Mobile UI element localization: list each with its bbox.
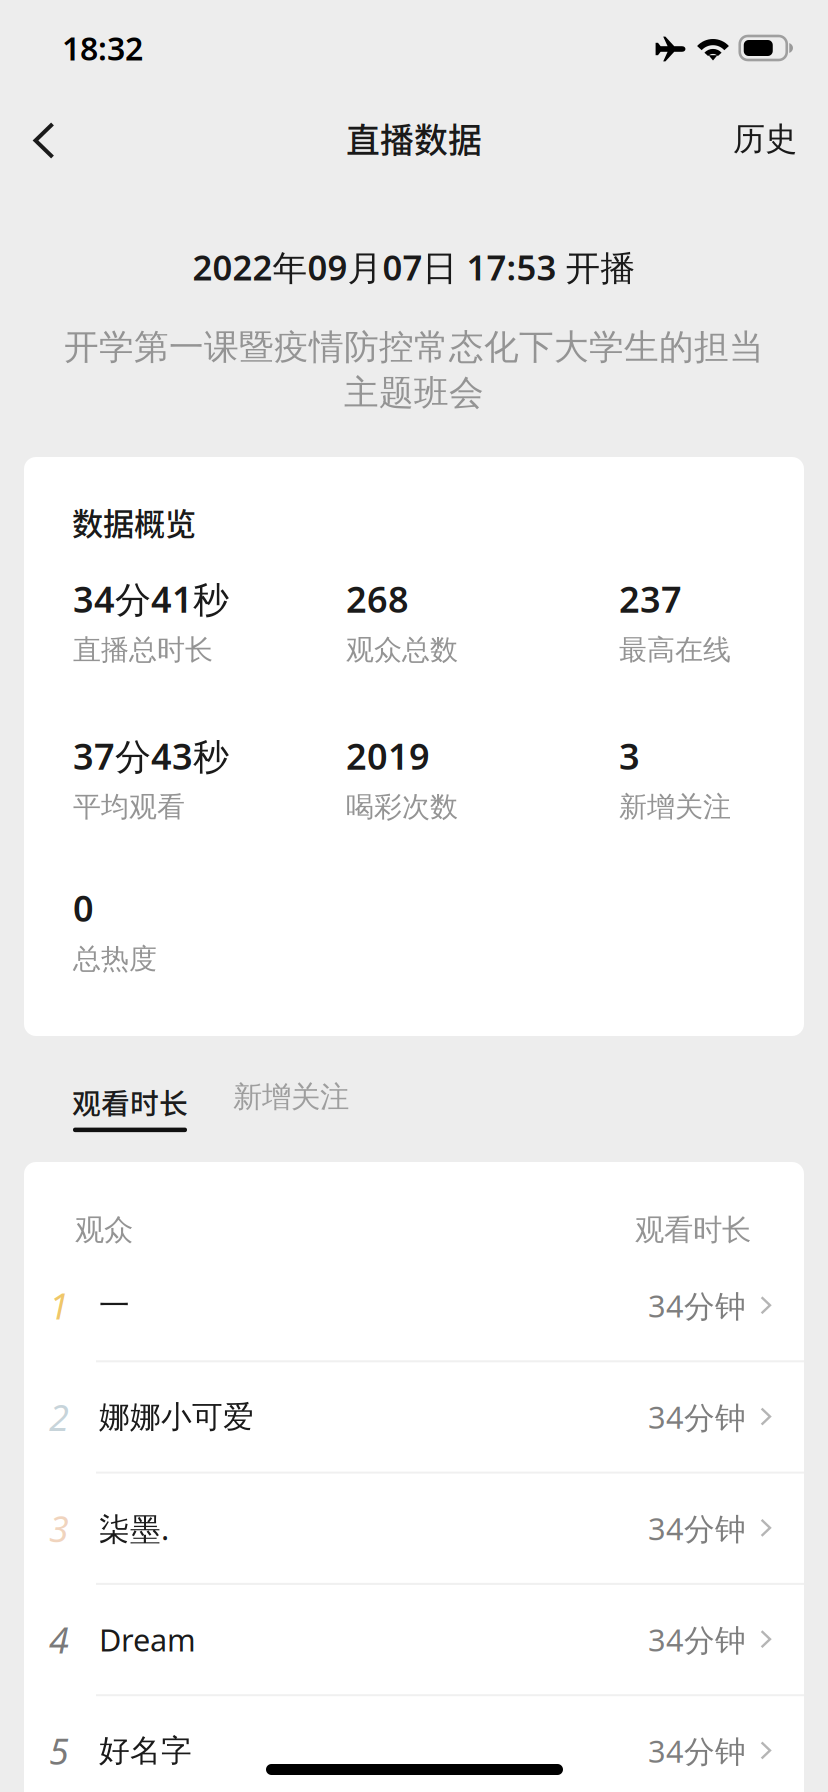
staticText: 历史 [733, 119, 797, 159]
staticText: 34分41秒 [73, 575, 229, 623]
staticText: 观看时长 [72, 1081, 188, 1123]
staticText: 观看时长 [635, 1212, 751, 1248]
staticText: 34分钟 [648, 1508, 746, 1549]
staticText: 34分钟 [648, 1285, 746, 1326]
button[interactable]: 观看时长 [72, 1081, 188, 1132]
staticText: 直播总时长 [73, 633, 213, 667]
staticText: 2 [49, 1393, 69, 1441]
staticText: 一 [99, 1287, 130, 1324]
staticText: 总热度 [73, 942, 157, 976]
staticText: 34分钟 [648, 1619, 746, 1660]
staticText: 平均观看 [73, 790, 185, 824]
staticText: 2022年09月07日 17:53 开播 [192, 244, 635, 290]
button[interactable]: 历史 [700, 93, 828, 195]
staticText: 3 [49, 1504, 69, 1552]
staticText: 2019 [346, 732, 430, 780]
button[interactable]: 2 [24, 1362, 804, 1472]
button[interactable]: 5 [24, 1696, 804, 1792]
staticText: 新增关注 [619, 790, 731, 824]
staticText: 娜娜小可爱 [99, 1398, 254, 1436]
staticText: 0 [73, 884, 94, 932]
staticText: 新增关注 [233, 1079, 349, 1115]
button[interactable]: 3 [24, 1474, 804, 1583]
staticText: 开学第一课暨疫情防控常态化下大学生的担当 [64, 326, 764, 369]
staticText: 喝彩次数 [346, 790, 458, 824]
staticText: 18:32 [62, 27, 143, 69]
staticText: 观众总数 [346, 633, 458, 667]
staticText: 34分钟 [648, 1730, 746, 1771]
staticText: 4 [49, 1616, 69, 1663]
staticText: 数据概览 [72, 499, 196, 544]
staticText: 好名字 [99, 1732, 192, 1770]
button[interactable]: Back [0, 96, 82, 192]
staticText: 观众 [75, 1212, 133, 1248]
staticText: 237 [619, 575, 682, 623]
button[interactable]: 新增关注 [188, 1079, 349, 1134]
staticText: 主题班会 [344, 372, 484, 414]
staticText: 3 [619, 732, 640, 780]
staticText: 柒墨. [99, 1508, 169, 1549]
staticText: 37分43秒 [73, 732, 229, 780]
button[interactable]: 1 [24, 1251, 804, 1360]
staticText: 34分钟 [648, 1397, 746, 1437]
staticText: Dream [99, 1619, 196, 1660]
staticText: 5 [49, 1727, 69, 1775]
staticText: 268 [346, 575, 409, 623]
staticText: 1 [49, 1282, 69, 1329]
staticText: 最高在线 [619, 633, 731, 667]
button[interactable]: 4 [24, 1585, 804, 1694]
staticText: 直播数据 [346, 113, 482, 162]
